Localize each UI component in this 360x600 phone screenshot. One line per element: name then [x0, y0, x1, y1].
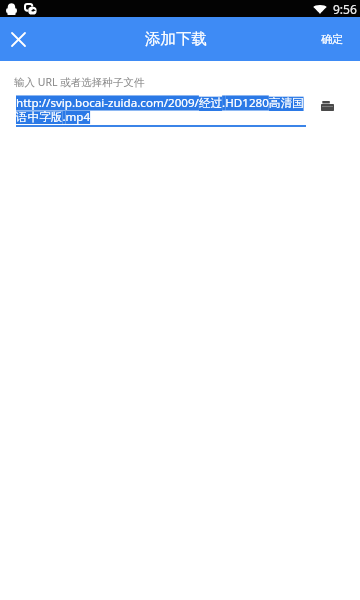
button[interactable]: http://svip.bocai-zuida.com/2009/经过.HD12…	[16, 95, 306, 127]
staticText: 输入 URL 或者选择种子文件	[14, 75, 145, 89]
button[interactable]: 确定	[307, 17, 360, 61]
button[interactable]: Choose torrent file	[317, 96, 337, 116]
staticText: http://svip.bocai-zuida.com/2009/经过.HD12…	[16, 95, 306, 124]
staticText: 确定	[321, 32, 343, 46]
staticText: 添加下载	[145, 29, 207, 49]
staticText: 9:56	[333, 1, 357, 17]
button[interactable]: Close	[0, 21, 36, 57]
